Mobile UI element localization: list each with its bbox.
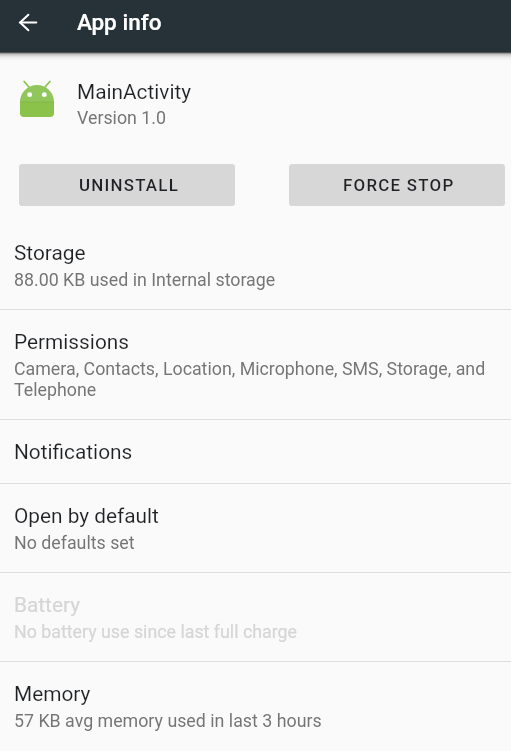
button[interactable]: Memory xyxy=(0,662,511,750)
staticText: App info xyxy=(77,9,162,35)
staticText: No defaults set xyxy=(14,532,135,553)
button[interactable]: Navigate up xyxy=(0,0,56,44)
button[interactable]: Storage xyxy=(0,221,511,309)
staticText: Battery xyxy=(14,593,80,617)
staticText: Storage xyxy=(14,241,86,265)
staticText: Camera, Contacts, Location, Microphone, … xyxy=(14,358,493,400)
staticText: 57 KB avg memory used in last 3 hours xyxy=(14,710,322,731)
button[interactable]: Battery xyxy=(0,573,511,661)
staticText: Open by default xyxy=(14,504,159,528)
button[interactable]: Notifications xyxy=(0,420,511,483)
staticText: No battery use since last full charge xyxy=(14,621,297,642)
staticText: Notifications xyxy=(14,440,133,464)
button[interactable]: UNINSTALL xyxy=(19,164,235,206)
staticText: FORCE STOP xyxy=(343,175,455,195)
button[interactable]: Permissions xyxy=(0,310,511,419)
staticText: Version 1.0 xyxy=(77,107,167,128)
staticText: 88.00 KB used in Internal storage xyxy=(14,269,276,290)
button[interactable]: FORCE STOP xyxy=(289,164,505,206)
staticText: MainActivity xyxy=(77,80,192,104)
button[interactable]: Open by default xyxy=(0,484,511,572)
staticText: UNINSTALL xyxy=(79,175,180,195)
staticText: Memory xyxy=(14,682,91,706)
staticText: Permissions xyxy=(14,330,129,354)
